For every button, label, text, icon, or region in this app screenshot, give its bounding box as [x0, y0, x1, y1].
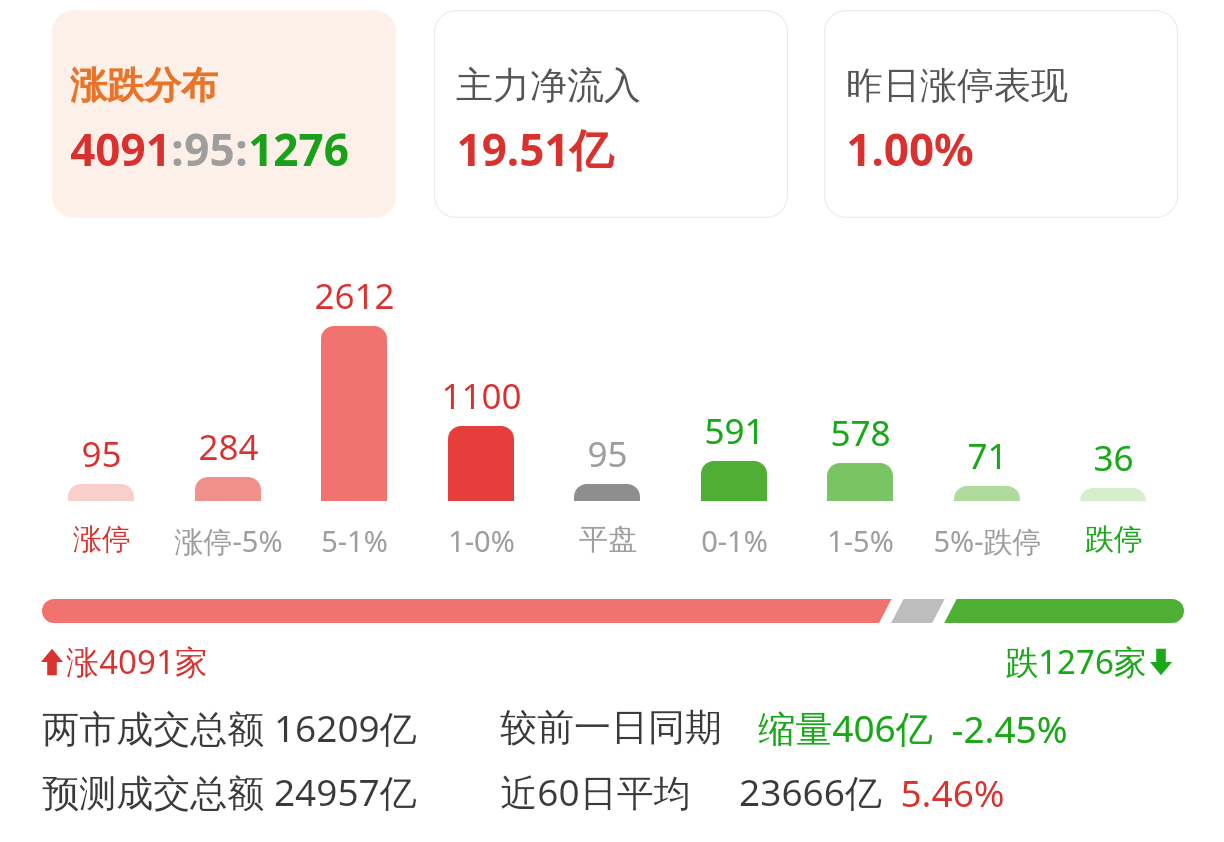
- staticText: 1100: [441, 372, 522, 420]
- staticText: 591: [704, 407, 765, 455]
- button[interactable]: 主力净流入: [434, 10, 788, 218]
- button[interactable]: 上涨: [40, 639, 208, 684]
- staticText: 5-1%: [321, 521, 388, 560]
- staticText: 2612: [314, 272, 395, 320]
- staticText: 预测成交总额 24957亿: [42, 766, 417, 817]
- button[interactable]: [954, 486, 1020, 501]
- staticText: 昨日涨停表现: [846, 62, 1068, 109]
- staticText: 95: [81, 430, 122, 478]
- staticText: 5.46%: [900, 767, 1005, 817]
- staticText: 19.51亿: [456, 119, 614, 179]
- other: 涨跌比例: [42, 599, 1184, 623]
- staticText: 主力净流入: [456, 62, 641, 109]
- button[interactable]: [68, 484, 134, 501]
- button[interactable]: [827, 463, 893, 501]
- button[interactable]: [1080, 488, 1146, 501]
- staticText: 95: [587, 430, 628, 478]
- button[interactable]: [321, 326, 387, 501]
- staticText: 5%-跌停: [933, 521, 1042, 561]
- button[interactable]: [195, 477, 261, 501]
- staticText: 跌停: [1085, 521, 1143, 558]
- staticText: 95: [184, 119, 235, 179]
- staticText: 0-1%: [701, 521, 768, 560]
- staticText: 近60日平均: [500, 766, 691, 817]
- staticText: 跌1276家: [1005, 639, 1147, 684]
- staticText: 578: [830, 409, 891, 457]
- staticText: 1276: [248, 119, 349, 179]
- staticText: 1-5%: [827, 521, 894, 560]
- staticText: 缩量406亿: [758, 702, 933, 753]
- staticText: -2.45%: [951, 703, 1068, 753]
- button[interactable]: 昨日涨停表现: [824, 10, 1178, 218]
- staticText: 涨跌分布: [70, 62, 218, 109]
- staticText: 平盘: [579, 521, 637, 558]
- staticText: 涨停: [73, 521, 131, 558]
- staticText: 涨4091家: [66, 639, 208, 684]
- button[interactable]: 跌1276家: [1005, 639, 1173, 684]
- staticText: 36: [1093, 434, 1134, 482]
- staticText: 涨停-5%: [174, 521, 283, 561]
- button[interactable]: [448, 426, 514, 501]
- button[interactable]: 涨跌分布: [52, 10, 396, 218]
- staticText: :: [235, 119, 248, 179]
- button[interactable]: [701, 461, 767, 501]
- staticText: 284: [198, 423, 259, 471]
- staticText: 4091: [70, 119, 171, 179]
- staticText: :: [171, 119, 184, 179]
- staticText: 两市成交总额 16209亿: [42, 702, 417, 753]
- staticText: 较前一日同期: [500, 704, 722, 751]
- other: 上涨: [40, 647, 64, 677]
- staticText: 71: [967, 432, 1008, 480]
- staticText: 1-0%: [448, 521, 515, 560]
- staticText: 23666亿: [739, 766, 882, 817]
- button[interactable]: [574, 484, 640, 501]
- staticText: 1.00%: [846, 119, 974, 179]
- other: 下跌: [1149, 647, 1173, 677]
